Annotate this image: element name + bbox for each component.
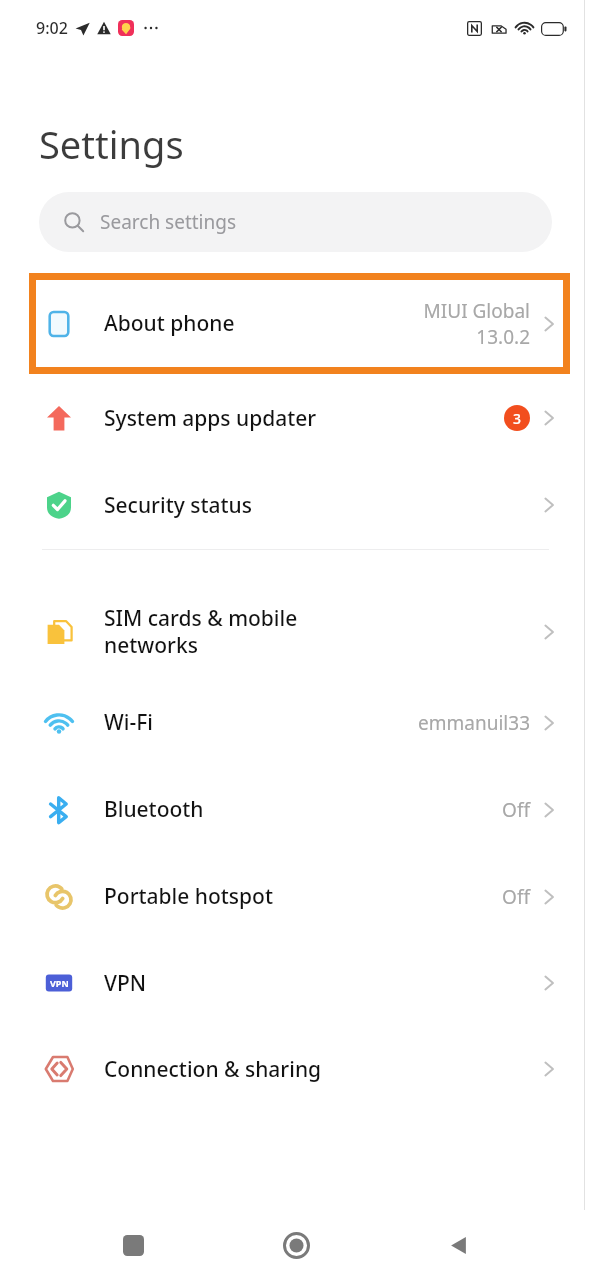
staticText: MIUI Global — [423, 298, 530, 324]
staticText: Settings — [39, 118, 184, 170]
staticText: Security status — [104, 491, 540, 520]
staticText: Off — [502, 797, 530, 823]
button[interactable]: VPN — [0, 940, 591, 1026]
button[interactable]: Portable hotspot — [0, 853, 591, 940]
staticText: Off — [502, 884, 530, 910]
button[interactable]: Search settings — [39, 192, 552, 252]
staticText: SIM cards & mobile networks — [104, 604, 540, 659]
button[interactable]: Recent apps — [104, 1216, 162, 1274]
button[interactable]: Connection & sharing — [0, 1026, 591, 1112]
button[interactable]: SIM cards & mobile networks — [0, 584, 591, 679]
staticText: Portable hotspot — [104, 882, 502, 911]
staticText: Connection & sharing — [104, 1055, 540, 1084]
button[interactable]: Back — [429, 1216, 487, 1274]
button[interactable]: Home — [267, 1216, 325, 1274]
staticText: Search settings — [100, 209, 237, 235]
button[interactable]: System apps updater — [0, 374, 591, 462]
staticText: System apps updater — [104, 404, 504, 433]
button[interactable]: Security status — [0, 462, 591, 548]
staticText: emmanuil33 — [418, 710, 530, 736]
staticText: 9:02 — [36, 17, 68, 39]
button[interactable]: Wi-Fi — [0, 679, 591, 766]
staticText: Bluetooth — [104, 795, 502, 824]
button[interactable]: About phone — [29, 273, 570, 374]
button[interactable]: Bluetooth — [0, 766, 591, 853]
staticText: Wi-Fi — [104, 708, 418, 737]
staticText: VPN — [50, 977, 69, 989]
staticText: About phone — [104, 309, 423, 338]
staticText: VPN — [104, 969, 540, 998]
staticText: 3 — [513, 409, 522, 428]
staticText: 13.0.2 — [476, 324, 530, 350]
